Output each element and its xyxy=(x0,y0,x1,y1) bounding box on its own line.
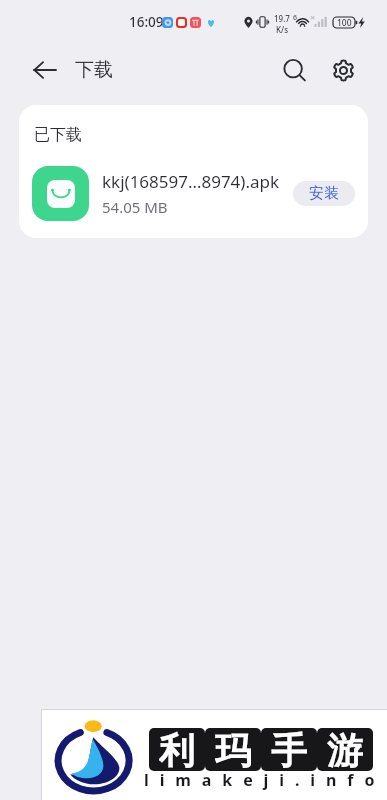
staticText: 手 xyxy=(271,728,307,771)
staticText: 玛 xyxy=(215,728,251,771)
staticText: 54.05 MB xyxy=(102,197,168,217)
staticText: 已下载 xyxy=(34,125,82,145)
staticText: limakeji.info xyxy=(144,769,386,791)
staticText: kkj(168597…8974).apk xyxy=(102,170,280,193)
staticText: 下载 xyxy=(75,58,113,82)
button[interactable]: Search xyxy=(270,46,318,94)
button[interactable]: kkj(168597…8974).apk xyxy=(19,156,368,230)
staticText: 安装 xyxy=(309,184,339,203)
button[interactable]: Back xyxy=(21,46,69,94)
staticText: 6 xyxy=(293,13,298,23)
staticText: 16:09 xyxy=(129,13,164,31)
button[interactable]: Settings xyxy=(319,46,367,94)
button[interactable]: 安装 xyxy=(293,181,355,206)
staticText: K/s xyxy=(276,24,289,35)
staticText: 100 xyxy=(337,17,352,28)
staticText: 游 xyxy=(327,728,363,771)
staticText: 19.7 xyxy=(274,13,290,24)
staticText: 利 xyxy=(159,728,195,771)
